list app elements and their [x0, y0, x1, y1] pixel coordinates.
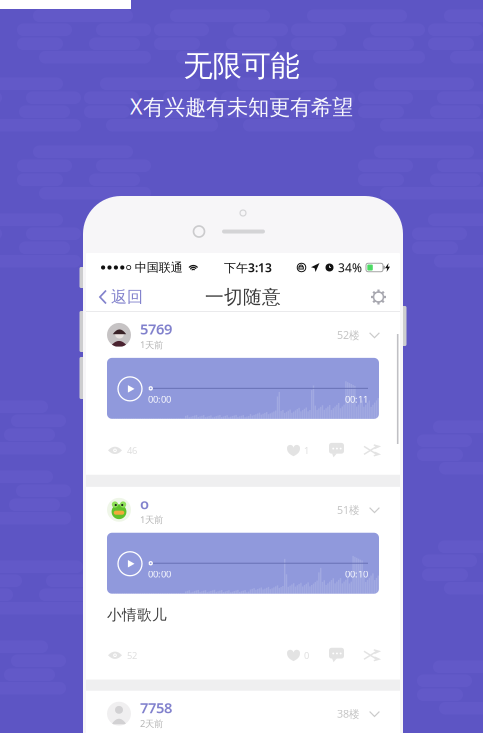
staticText: 无限可能 — [183, 48, 299, 84]
staticText: X有兴趣有未知更有希望 — [130, 92, 353, 120]
staticText: 中国联通 — [135, 260, 183, 275]
staticText: 返回 — [111, 287, 143, 307]
staticText: 52楼 — [337, 328, 360, 342]
staticText: 00:00 — [148, 568, 171, 580]
staticText: 1天前 — [140, 338, 163, 351]
staticText: 1 — [304, 444, 309, 457]
staticText: 一切随意 — [205, 285, 281, 308]
staticText: o — [140, 494, 149, 513]
staticText: 小情歌儿 — [107, 606, 167, 624]
staticText: 38楼 — [337, 707, 360, 721]
staticText: 51楼 — [337, 503, 360, 517]
button[interactable]: Settings — [359, 282, 400, 312]
staticText: 52 — [127, 649, 137, 661]
staticText: 2天前 — [140, 717, 163, 730]
staticText: 34% — [338, 259, 362, 275]
staticText: 5769 — [140, 319, 172, 338]
staticText: 7758 — [140, 698, 172, 717]
staticText: 46 — [127, 444, 137, 457]
staticText: 下午3:13 — [224, 259, 272, 275]
staticText: 00:00 — [148, 393, 171, 405]
staticText: 1天前 — [140, 513, 163, 526]
button[interactable]: 返回 — [86, 282, 153, 312]
staticText: 00:11 — [345, 393, 368, 405]
staticText: 0 — [304, 649, 309, 661]
staticText: 00:10 — [345, 568, 368, 580]
